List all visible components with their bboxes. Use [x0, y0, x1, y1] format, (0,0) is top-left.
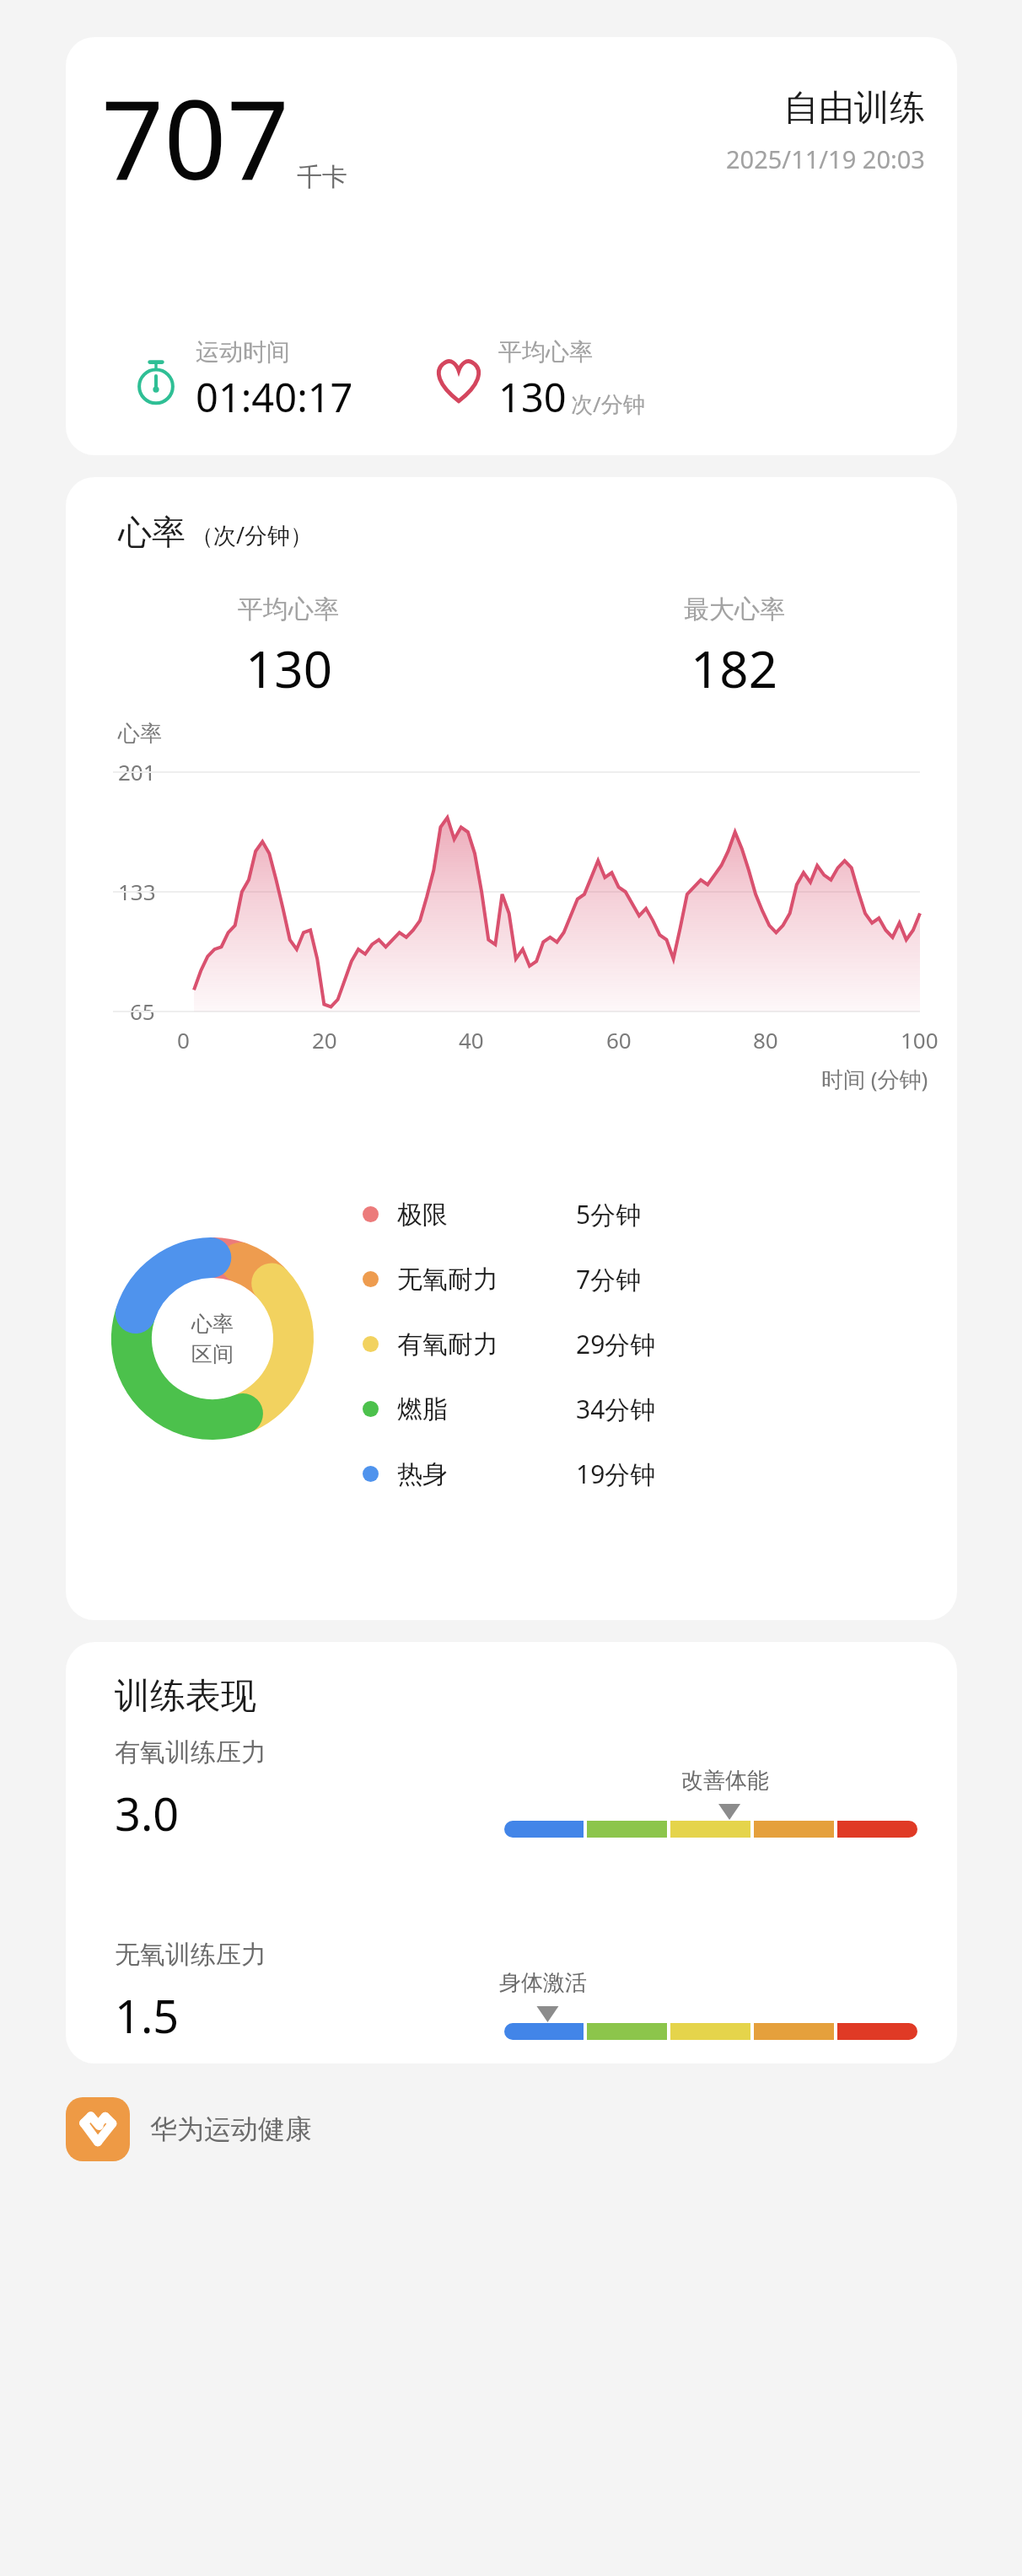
staticText: 有氧训练压力 [115, 1736, 266, 1768]
staticText: （次/分钟） [191, 519, 314, 550]
staticText: 平均心率 [238, 593, 339, 625]
staticText: 100 [901, 1025, 939, 1055]
staticText: 65 [130, 996, 155, 1026]
staticText: 华为运动健康 [150, 2112, 312, 2146]
staticText: 19分钟 [576, 1457, 656, 1491]
staticText: 01:40:17 [196, 370, 353, 424]
staticText: 最大心率 [684, 593, 785, 625]
staticText: 1.5 [115, 1984, 180, 2047]
staticText: 心率 [118, 511, 186, 553]
staticText: 身体激活 [499, 1969, 587, 1997]
staticText: 无氧耐力 [397, 1264, 498, 1296]
staticText: 0 [177, 1025, 190, 1055]
staticText: 3.0 [115, 1782, 180, 1844]
staticText: 7分钟 [576, 1262, 642, 1296]
staticText: 130 [245, 634, 332, 703]
staticText: 次/分钟 [571, 389, 645, 419]
staticText: 有氧耐力 [397, 1328, 498, 1360]
staticText: 改善体能 [681, 1767, 769, 1795]
staticText: 心率 [118, 720, 162, 748]
staticText: 训练表现 [115, 1674, 256, 1719]
staticText: 无氧训练压力 [115, 1939, 266, 1971]
staticText: 运动时间 [196, 337, 290, 367]
button[interactable]: 心率 [66, 477, 957, 1620]
staticText: 平均心率 [498, 337, 593, 367]
staticText: 133 [118, 877, 156, 906]
staticText: 80 [753, 1025, 778, 1055]
staticText: 热身 [397, 1458, 448, 1490]
button[interactable]: 707 [66, 37, 957, 455]
button[interactable]: 华为运动健康 [66, 2087, 1022, 2171]
staticText: 29分钟 [576, 1327, 656, 1361]
staticText: 201 [118, 757, 156, 786]
other: 华为运动健康 [66, 2097, 130, 2161]
staticText: 心率 [191, 1311, 234, 1337]
staticText: 区间 [191, 1341, 234, 1367]
staticText: 时间 (分钟) [821, 1064, 928, 1094]
staticText: 182 [691, 634, 777, 703]
staticText: 20 [312, 1025, 337, 1055]
staticText: 60 [606, 1025, 632, 1055]
staticText: 千卡 [297, 161, 347, 193]
staticText: 34分钟 [576, 1392, 656, 1426]
staticText: 极限 [397, 1199, 448, 1231]
staticText: 2025/11/19 20:03 [726, 142, 925, 175]
staticText: 40 [459, 1025, 484, 1055]
staticText: 130 [498, 370, 567, 424]
staticText: 燃脂 [397, 1393, 448, 1425]
staticText: 5分钟 [576, 1197, 642, 1232]
staticText: 707 [101, 62, 290, 212]
button[interactable]: 训练表现 [66, 1642, 957, 2063]
staticText: 自由训练 [783, 86, 925, 131]
